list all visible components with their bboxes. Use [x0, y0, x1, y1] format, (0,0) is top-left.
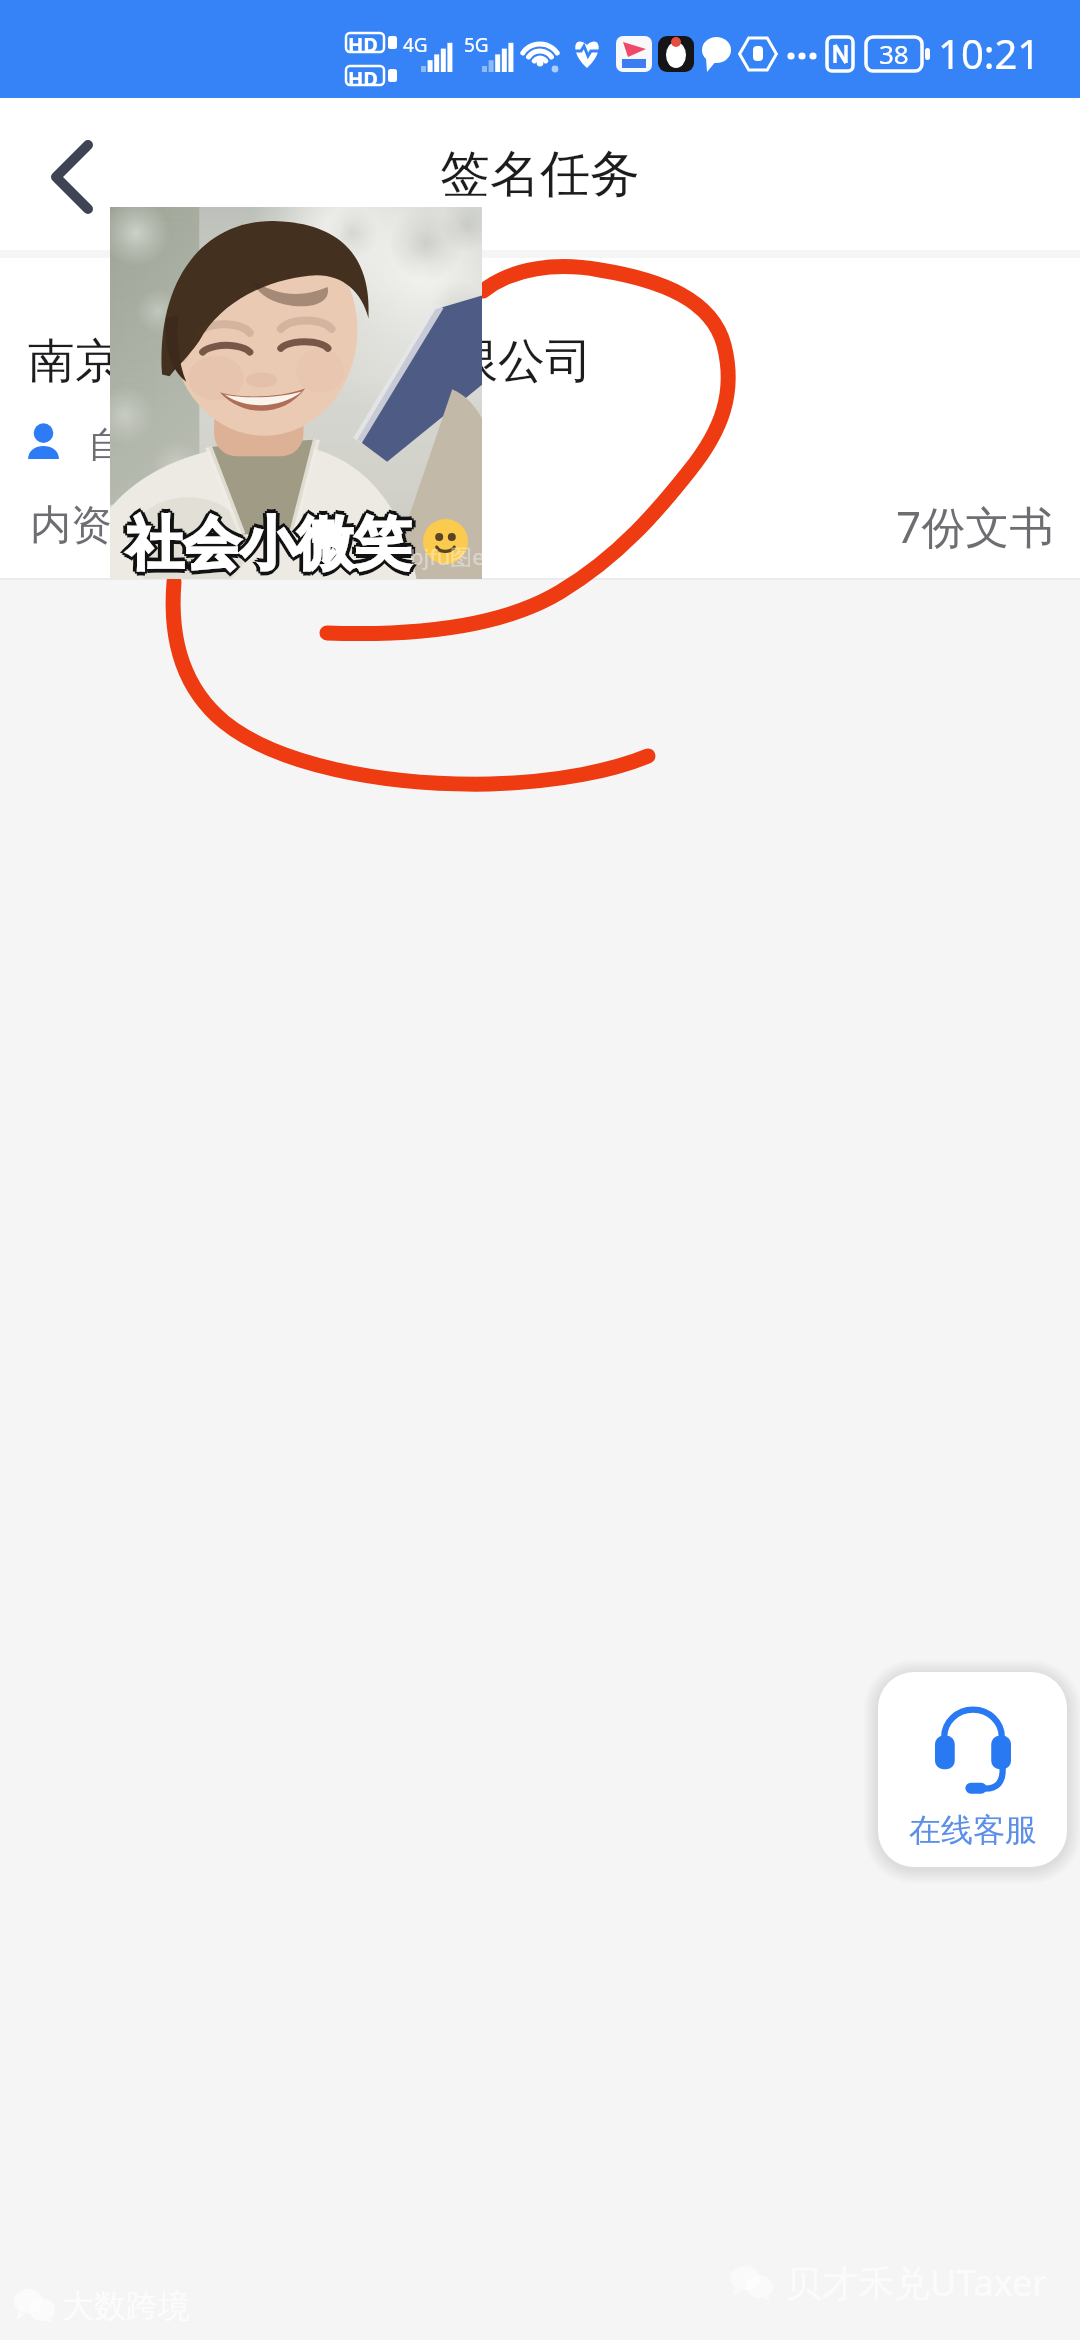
staticText: HD [348, 65, 378, 92]
staticText: 南京信诚企业管理有限公司 [28, 332, 592, 391]
button[interactable]: Back [0, 98, 146, 250]
staticText: 社会小微笑 [126, 510, 411, 579]
staticText: 社会小微笑 [122, 508, 407, 579]
staticText: bjfu图e4ez [410, 541, 482, 571]
staticText: 社会小微笑 [124, 508, 409, 579]
staticText: HD [348, 31, 378, 58]
staticText: 社会小微笑 [128, 510, 413, 579]
staticText: 7份文书 [896, 496, 1054, 556]
staticText: 5G [464, 32, 489, 58]
staticText: 社会小微笑 [126, 508, 411, 579]
staticText: 38 [879, 36, 909, 71]
staticText: 内资公司 [30, 500, 194, 552]
staticText: 社会小微笑 [128, 508, 413, 579]
staticText: 10:21 [938, 26, 1041, 80]
staticText: 签名任务 [440, 143, 640, 206]
staticText: 社会小微笑 [124, 506, 409, 578]
staticText: 社会小微笑 [124, 510, 409, 579]
staticText: 社会小微笑 [128, 506, 413, 578]
staticText: 社会小微笑 [130, 508, 415, 579]
button[interactable]: 南京信诚企业管理有限公司 [0, 258, 1080, 580]
staticText: 4G [403, 32, 428, 58]
staticText: 社会小微笑 [126, 512, 411, 579]
staticText: 在线客服 [909, 1810, 1037, 1850]
staticText: 社会小微笑 [126, 504, 411, 576]
staticText: 自然人投资或控股 [88, 422, 376, 467]
button[interactable]: 在线客服 [878, 1672, 1067, 1867]
staticText: 社会小微笑 [126, 506, 411, 578]
